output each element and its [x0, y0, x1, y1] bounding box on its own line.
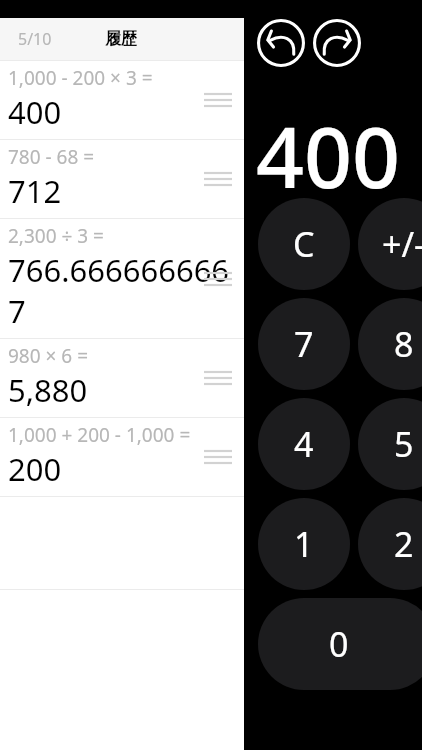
staticText: 400 — [8, 91, 236, 133]
button[interactable]: Reorder — [204, 446, 232, 468]
staticText: 7 — [294, 321, 314, 367]
button[interactable]: 780 - 68 = — [0, 140, 244, 218]
staticText: 1 — [294, 521, 314, 567]
button[interactable]: 1,000 + 200 - 1,000 = — [0, 418, 244, 496]
button[interactable]: 4 — [258, 398, 350, 490]
staticText: 712 — [8, 170, 236, 212]
staticText: +/- — [382, 221, 422, 267]
button[interactable]: 2,300 ÷ 3 = — [0, 219, 244, 338]
button[interactable]: +/- — [358, 198, 422, 290]
button[interactable]: 0 — [258, 598, 422, 690]
staticText: 400 — [256, 98, 401, 212]
staticText: 2 — [394, 521, 414, 567]
staticText: 1,000 - 200 × 3 = — [8, 65, 209, 91]
button[interactable]: Undo — [256, 18, 306, 68]
staticText: 780 - 68 = — [8, 144, 209, 170]
button[interactable]: 2 — [358, 498, 422, 590]
staticText: 980 × 6 = — [8, 343, 209, 369]
staticText: 0 — [329, 621, 349, 667]
button[interactable]: Reorder — [204, 268, 232, 290]
button[interactable]: 5 — [358, 398, 422, 490]
button[interactable]: Reorder — [204, 168, 232, 190]
button[interactable]: Redo — [312, 18, 362, 68]
button[interactable]: 1,000 - 200 × 3 = — [0, 61, 244, 139]
staticText: 1,000 + 200 - 1,000 = — [8, 422, 209, 448]
staticText: 766.6666666667 — [8, 249, 236, 332]
staticText: 200 — [8, 448, 236, 490]
staticText: 4 — [294, 421, 314, 467]
staticText: 2,300 ÷ 3 = — [8, 223, 209, 249]
staticText: 履歴 — [105, 29, 137, 49]
button[interactable]: 8 — [358, 298, 422, 390]
button[interactable]: 1 — [258, 498, 350, 590]
staticText: C — [293, 221, 315, 267]
button[interactable]: C — [258, 198, 350, 290]
staticText: 5/10 — [18, 28, 52, 50]
button[interactable]: Reorder — [204, 367, 232, 389]
button[interactable]: Reorder — [204, 89, 232, 111]
staticText: 8 — [394, 321, 414, 367]
staticText: 5 — [394, 421, 414, 467]
button[interactable]: 7 — [258, 298, 350, 390]
staticText: 5,880 — [8, 369, 236, 411]
button[interactable]: 980 × 6 = — [0, 339, 244, 417]
